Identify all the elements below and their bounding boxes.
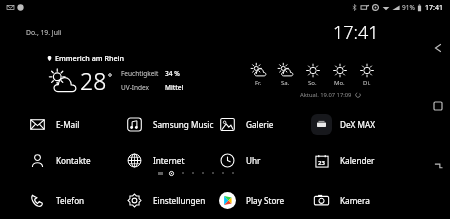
staticText: 17:41 <box>425 3 443 13</box>
staticText: Telefon <box>56 195 85 206</box>
staticText: Emmerich am Rhein <box>55 53 125 63</box>
button[interactable]: Fr. <box>245 64 272 87</box>
button[interactable]: Einstellungen <box>124 190 206 211</box>
staticText: Di. <box>363 79 371 87</box>
button[interactable]: Emmerich am Rhein <box>47 53 184 96</box>
button[interactable]: 23 <box>311 150 375 171</box>
button[interactable]: Home screen <box>168 170 174 176</box>
button[interactable]: Uhr <box>217 150 261 171</box>
button[interactable]: E-Mail <box>27 114 80 135</box>
button[interactable]: Galerie <box>217 114 274 135</box>
staticText: Mittel <box>165 83 184 92</box>
staticText: Kontakte <box>56 155 91 166</box>
staticText: Galerie <box>246 119 274 130</box>
button[interactable]: Home <box>428 155 448 175</box>
staticText: Play Store <box>246 195 285 206</box>
button[interactable]: Samsung Music <box>124 114 214 135</box>
button[interactable]: Play Store <box>217 190 285 211</box>
staticText: 23 <box>318 159 325 167</box>
button[interactable]: Back <box>428 38 448 58</box>
staticText: UV-Index <box>121 83 149 92</box>
staticText: Uhr <box>246 155 261 166</box>
staticText: Internet <box>153 155 185 166</box>
staticText: DeX MAX <box>340 119 375 130</box>
staticText: Samsung Music <box>153 119 214 130</box>
staticText: Kalender <box>340 155 375 166</box>
staticText: Fr. <box>255 79 262 87</box>
staticText: Feuchtigkeit <box>121 69 159 78</box>
button[interactable]: So. <box>299 64 326 87</box>
staticText: Aktual. 19.07 17:09 <box>300 91 352 99</box>
button[interactable]: Kontakte <box>27 150 91 171</box>
staticText: Do., 19. Juli <box>26 28 62 37</box>
button[interactable]: Di. <box>353 64 380 87</box>
staticText: Sa. <box>281 79 290 87</box>
button[interactable]: Recents <box>428 96 448 116</box>
staticText: Einstellungen <box>153 195 206 206</box>
staticText: 91% <box>402 3 415 12</box>
button[interactable]: Mo. <box>326 64 353 87</box>
button[interactable]: DeX MAX <box>311 114 375 135</box>
staticText: Mo. <box>334 79 345 87</box>
button[interactable]: Telefon <box>27 190 85 211</box>
staticText: Kamera <box>340 195 370 206</box>
button[interactable]: Internet <box>124 150 185 171</box>
staticText: 17:41 <box>333 20 379 45</box>
staticText: 34 % <box>165 69 180 78</box>
staticText: So. <box>308 79 317 87</box>
button[interactable]: Sa. <box>272 64 299 87</box>
staticText: E-Mail <box>56 119 80 130</box>
button[interactable]: Kamera <box>311 190 370 211</box>
staticText: 28 <box>80 65 107 96</box>
